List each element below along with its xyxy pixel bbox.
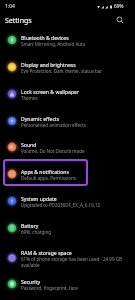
staticText: RAM & storage space — [21, 250, 72, 257]
staticText: Volume, Do Not Disturb mode — [21, 148, 85, 154]
staticText: Smart Mirroring, Android Auto — [21, 41, 86, 47]
button[interactable]: System update — [0, 188, 135, 215]
button[interactable]: Apps & notifications — [0, 161, 135, 188]
staticText: Bluetooth & devices — [21, 35, 69, 42]
staticText: Dynamic effects — [21, 116, 60, 123]
staticText: Default apps, Permissions — [21, 175, 76, 181]
staticText: Display and brightness — [21, 62, 76, 69]
button[interactable]: Sound — [0, 134, 135, 161]
button[interactable]: Search — [112, 12, 128, 28]
button[interactable]: Bluetooth & devices — [0, 27, 135, 54]
staticText: Security — [21, 279, 41, 286]
button[interactable]: Dynamic effects — [0, 108, 135, 135]
button[interactable]: Security — [0, 271, 135, 298]
staticText: Lock screen & wallpaper — [21, 89, 79, 96]
staticText: Battery — [21, 223, 39, 230]
staticText: Password, fingerprint, face — [21, 285, 78, 291]
staticText: 69%, charging — [21, 229, 52, 235]
staticText: System update — [21, 196, 57, 203]
staticText: 1:04 — [5, 3, 15, 10]
staticText: Upgraded to PD2036DF_EX_A_6.16.12 — [21, 202, 101, 208]
button[interactable]: Lock screen & wallpaper — [0, 81, 135, 108]
button[interactable]: Battery — [0, 215, 135, 242]
staticText: 61% of phone storage has been used - 24.… — [21, 256, 126, 268]
staticText: Apps & notifications — [21, 169, 69, 176]
staticText: Eye Protection, Dark theme, status bar — [21, 68, 103, 74]
staticText: Themes — [21, 95, 38, 101]
staticText: Sound — [21, 142, 37, 149]
staticText: 69% — [114, 3, 124, 10]
staticText: Settings — [5, 16, 32, 26]
staticText: Personalised animation effects — [21, 122, 87, 128]
button[interactable]: RAM & storage space — [0, 243, 135, 272]
button[interactable]: Display and brightness — [0, 54, 135, 81]
